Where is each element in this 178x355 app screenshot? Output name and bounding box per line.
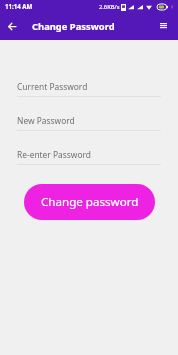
staticText: Current Password	[17, 81, 88, 92]
button[interactable]: Back	[3, 17, 21, 35]
staticText: 11:14 AM	[5, 2, 33, 10]
button[interactable]: Current Password	[17, 81, 161, 97]
staticText: Change password	[41, 194, 139, 210]
button[interactable]: Menu	[154, 17, 172, 35]
staticText: 2.6KB/s	[99, 3, 120, 11]
staticText: New Password	[17, 115, 75, 126]
staticText: Re-enter Password	[17, 149, 91, 160]
staticText: Change Password	[32, 20, 115, 33]
button[interactable]: Change password	[24, 184, 155, 220]
button[interactable]: Re-enter Password	[17, 149, 161, 165]
button[interactable]: New Password	[17, 115, 161, 131]
